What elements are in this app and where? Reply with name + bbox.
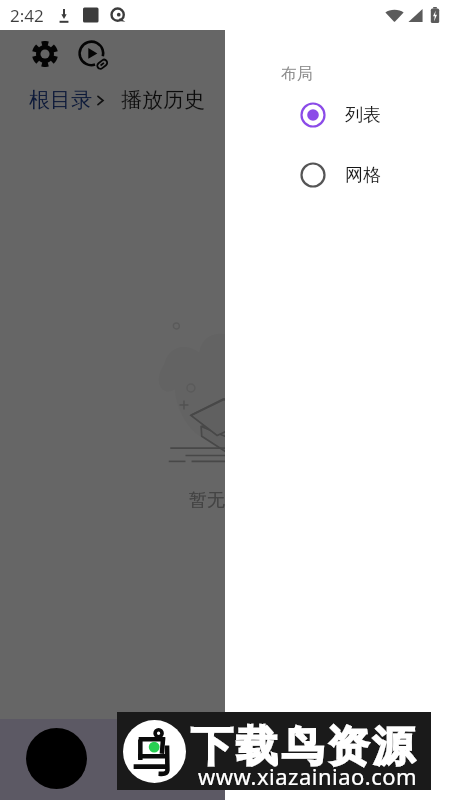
staticText: 布局: [281, 64, 313, 84]
button[interactable]: 列表: [225, 101, 450, 129]
staticText: www.xiazainiao.com: [198, 761, 418, 791]
button[interactable]: Play: [26, 728, 87, 789]
button[interactable]: 播放历史: [121, 87, 205, 113]
staticText: 列表: [345, 104, 381, 127]
button[interactable]: Play history link: [74, 36, 115, 77]
button[interactable]: 根目录: [29, 87, 92, 113]
staticText: 网格: [345, 164, 381, 187]
button[interactable]: Settings: [24, 33, 65, 74]
staticText: 下载鸟资源: [189, 721, 416, 774]
other: xiazainiao logo: [123, 720, 186, 783]
staticText: 暂无数据: [189, 489, 261, 512]
button[interactable]: 网格: [225, 161, 450, 189]
staticText: 2:42: [10, 4, 44, 27]
